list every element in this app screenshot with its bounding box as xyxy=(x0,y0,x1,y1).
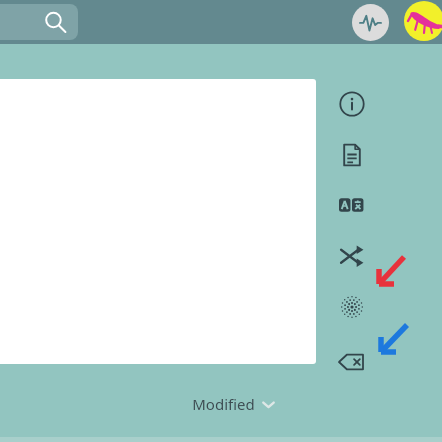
button[interactable]: Profile xyxy=(404,1,442,41)
button[interactable]: Info xyxy=(330,82,374,126)
button[interactable]: Search xyxy=(0,4,78,40)
button[interactable]: Backspace xyxy=(330,340,374,384)
button[interactable]: Document xyxy=(330,133,374,177)
button[interactable]: Modified xyxy=(186,390,281,418)
staticText: Modified xyxy=(192,394,255,414)
button[interactable]: Translate xyxy=(330,183,374,227)
button[interactable]: Activity xyxy=(352,4,389,41)
button[interactable]: Effects xyxy=(330,285,374,329)
button[interactable]: Shuffle xyxy=(330,234,374,278)
